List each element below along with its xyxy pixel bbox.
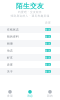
button[interactable]: 设置 [45, 21, 51, 24]
staticText: 消息 [27, 94, 33, 97]
button[interactable]: 修改 [45, 42, 51, 45]
button[interactable]: 修改 [45, 49, 51, 52]
button[interactable]: 修改 [45, 56, 51, 59]
button[interactable]: 消息 [20, 90, 40, 97]
staticText: 设置 [45, 21, 51, 24]
staticText: 修改 [45, 70, 51, 73]
button[interactable]: 发现 [0, 90, 20, 97]
staticText: 修改 [45, 56, 51, 59]
staticText: 修改 [45, 49, 51, 52]
staticText: 陌生交友 [16, 2, 44, 10]
staticText: 设置 [7, 63, 13, 66]
button[interactable]: 修改 [45, 63, 51, 66]
staticText: 好友 [7, 56, 13, 59]
staticText: 动态 [7, 49, 13, 52]
staticText: 我的 [47, 94, 53, 97]
button[interactable]: 我的 [40, 90, 60, 97]
staticText: 发现 [7, 94, 13, 97]
staticText: 关于 [7, 70, 13, 73]
staticText: 相册 [7, 42, 13, 45]
staticText: 我的资料 [7, 35, 19, 38]
staticText: 找到身边的人 · 遇见有趣灵魂 [10, 14, 49, 17]
button[interactable]: 修改 [45, 70, 51, 73]
staticText: 在线状态 [7, 28, 19, 31]
staticText: 约爱吧 · 交友软件 [18, 10, 42, 14]
button[interactable]: 修改 [45, 28, 51, 31]
staticText: 修改 [45, 42, 51, 45]
button[interactable]: 修改 [45, 35, 51, 38]
staticText: 修改 [45, 28, 51, 31]
staticText: 修改 [45, 35, 51, 38]
staticText: 修改 [45, 63, 51, 66]
